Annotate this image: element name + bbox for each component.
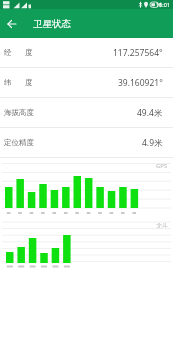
staticText: 39.160921°	[118, 77, 163, 89]
button[interactable]: 纬	[0, 68, 173, 98]
button[interactable]: 海拔高度	[0, 98, 173, 128]
staticText: 117.257564°	[113, 47, 163, 59]
staticText: 经	[4, 48, 12, 57]
staticText: 北斗	[156, 222, 168, 230]
staticText: 度	[25, 48, 33, 57]
button[interactable]: 定位精度	[0, 128, 173, 158]
staticText: 4.9米	[142, 137, 163, 149]
staticText: GPS	[156, 162, 168, 170]
staticText: 纬	[4, 78, 12, 87]
button[interactable]: 经	[0, 38, 173, 68]
staticText: 定位精度	[4, 138, 34, 147]
button[interactable]	[0, 12, 24, 36]
staticText: 卫星状态	[33, 18, 71, 30]
staticText: 海拔高度	[4, 108, 34, 117]
staticText: 49.4米	[137, 107, 163, 119]
staticText: 度	[25, 78, 33, 87]
staticText: 15:01	[156, 1, 171, 8]
